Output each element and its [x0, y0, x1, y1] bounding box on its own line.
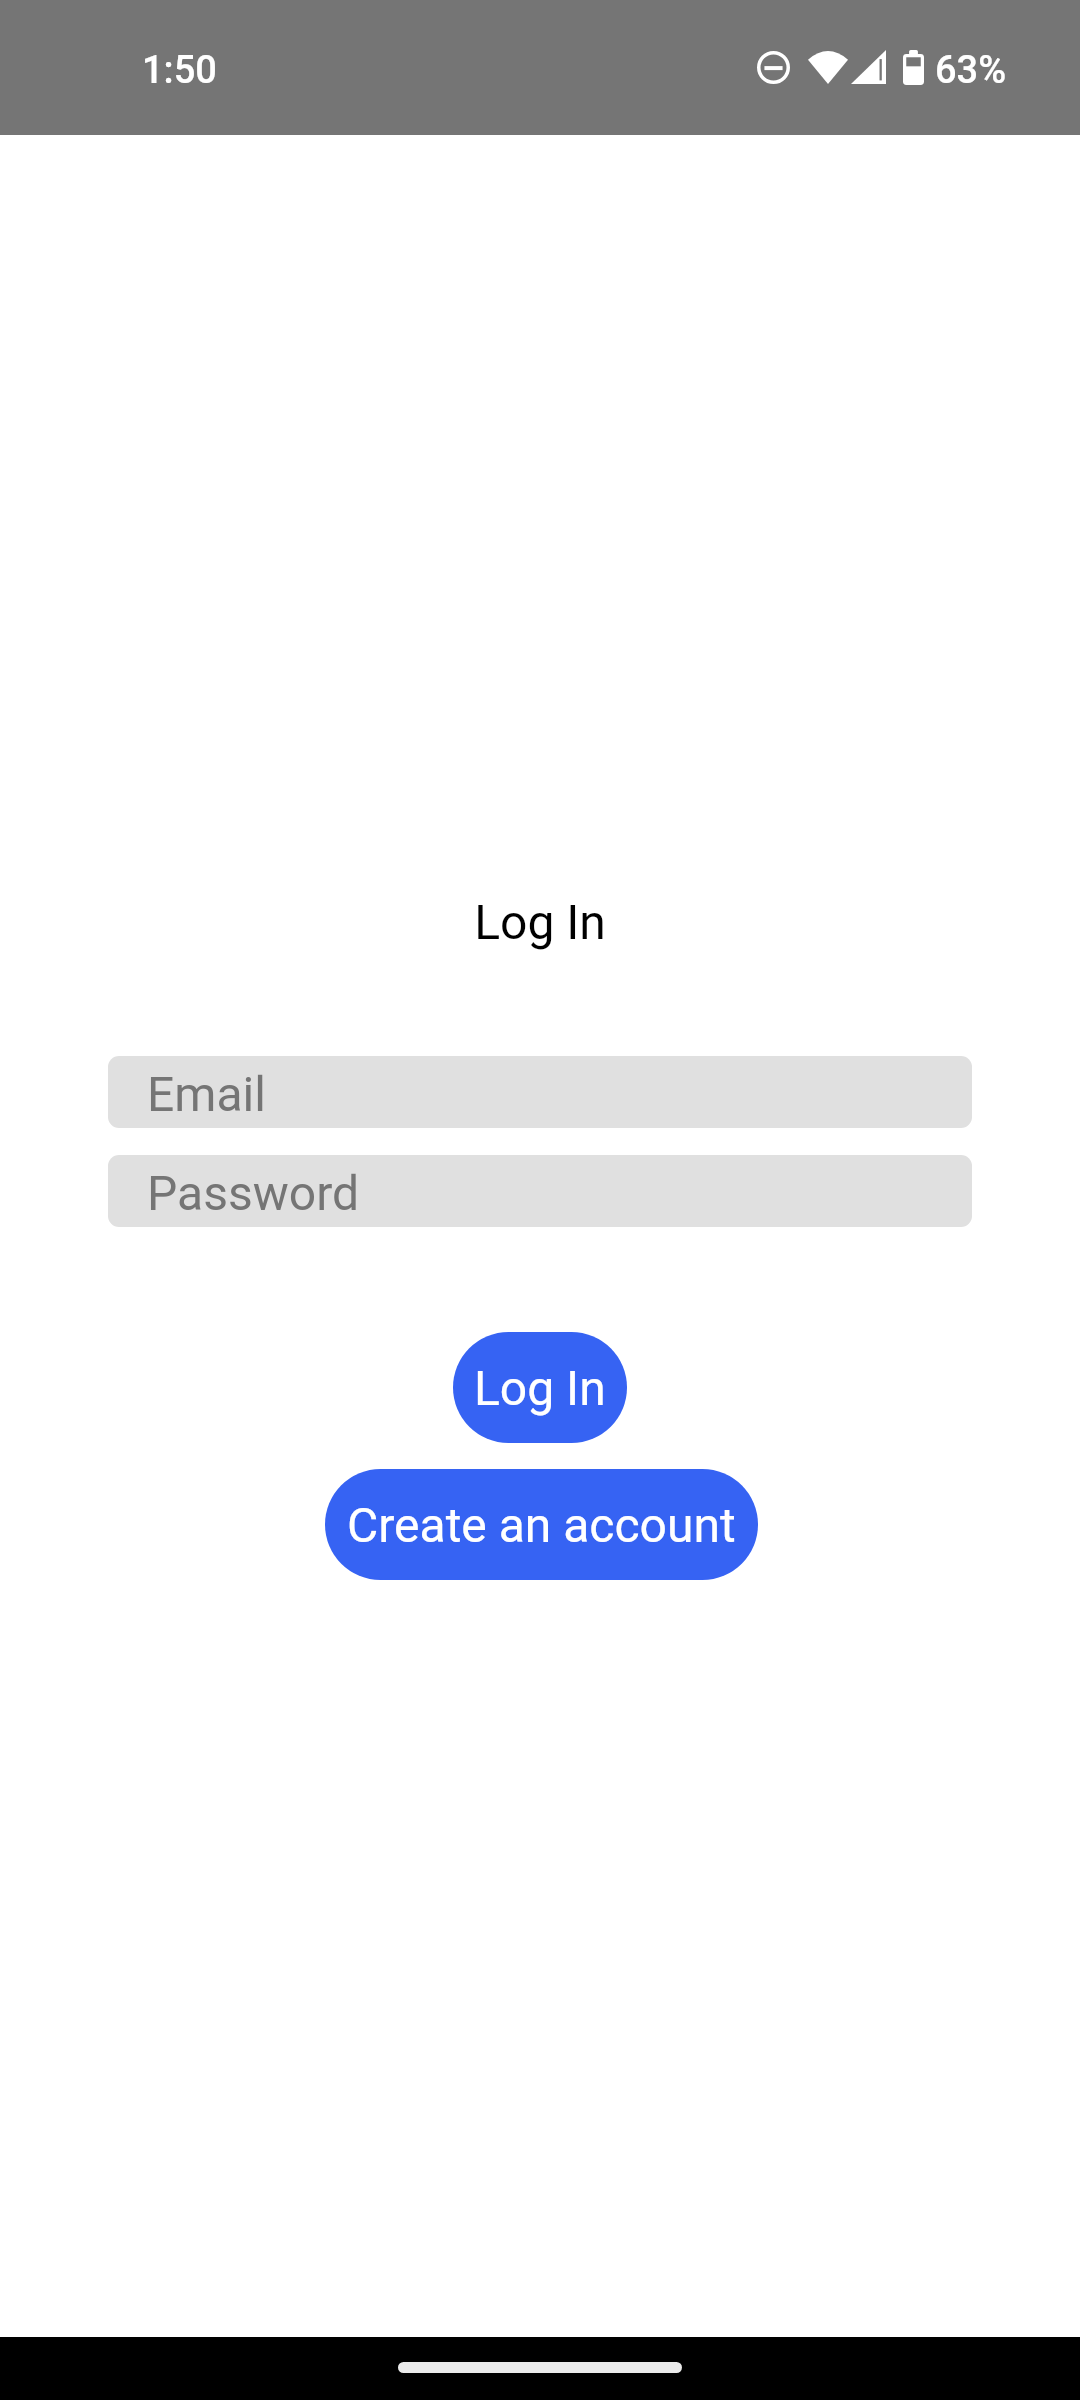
other: Wi-Fi — [808, 50, 848, 84]
button[interactable]: Home — [398, 2362, 682, 2373]
staticText: Password — [147, 1165, 360, 1221]
staticText: Log In — [0, 894, 1080, 950]
staticText: Email — [147, 1066, 266, 1122]
staticText: Log In — [474, 1360, 606, 1416]
button[interactable]: Create an account — [325, 1469, 758, 1580]
other: Mobile signal — [851, 50, 886, 84]
other: Battery 63 percent — [903, 50, 924, 85]
button[interactable]: Email — [108, 1056, 972, 1128]
staticText: 63% — [935, 48, 1007, 93]
staticText: Create an account — [347, 1497, 736, 1553]
button[interactable]: Password — [108, 1155, 972, 1227]
staticText: 1:50 — [142, 48, 217, 93]
other: Do not disturb — [757, 50, 790, 85]
button[interactable]: Log In — [453, 1332, 627, 1443]
